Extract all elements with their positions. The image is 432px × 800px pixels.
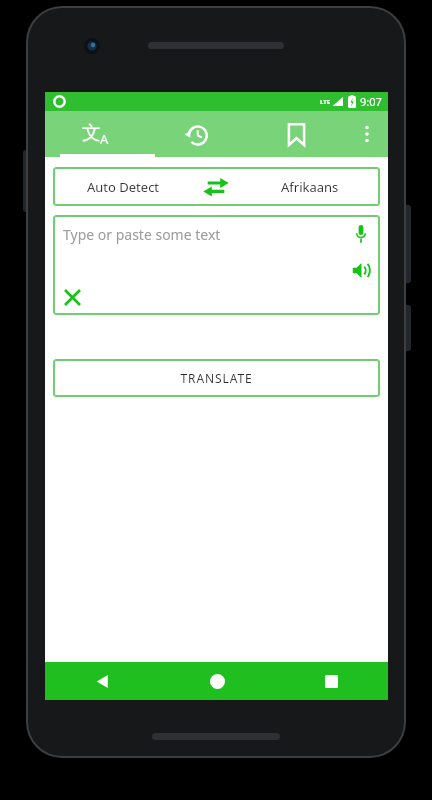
staticText: TRANSLATE xyxy=(180,370,253,386)
staticText: Auto Detect xyxy=(87,178,160,196)
button[interactable]: Translate xyxy=(45,111,146,157)
staticText: A xyxy=(100,130,109,148)
button[interactable]: Recent apps xyxy=(274,662,388,700)
button[interactable]: Auto Detect xyxy=(53,167,193,206)
staticText: 文 xyxy=(82,121,101,145)
button[interactable]: Saved xyxy=(246,111,346,157)
button[interactable]: History xyxy=(146,111,246,157)
button[interactable]: Home xyxy=(160,662,274,700)
button[interactable]: Swap languages xyxy=(193,167,239,206)
button[interactable]: Listen xyxy=(347,256,375,284)
button[interactable]: Afrikaans xyxy=(239,167,380,206)
staticText: Afrikaans xyxy=(281,178,339,196)
button[interactable]: Back xyxy=(45,662,160,700)
staticText: LTE xyxy=(320,98,331,106)
button[interactable]: Clear text xyxy=(57,282,87,312)
staticText: Type or paste some text xyxy=(63,225,221,244)
button[interactable]: TRANSLATE xyxy=(53,359,380,397)
staticText: 9:07 xyxy=(360,94,382,109)
button[interactable]: Voice input xyxy=(347,220,375,248)
button[interactable]: More options xyxy=(346,111,388,157)
